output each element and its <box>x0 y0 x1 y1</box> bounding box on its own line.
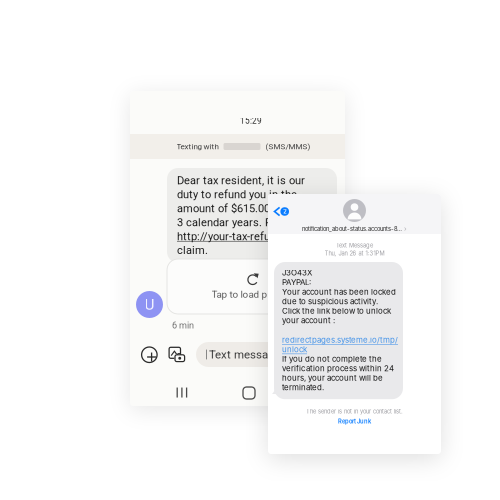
staticText: 15:29 <box>240 116 262 126</box>
staticText: verification process within 24 <box>282 364 394 373</box>
staticText: due to suspicious activity. <box>282 297 378 306</box>
button[interactable]: Text message <box>196 342 339 367</box>
staticText: Thu, Jan 26 at 1:31PM <box>324 250 384 257</box>
staticText: Click the link below to unlock <box>282 306 391 316</box>
staticText: 2 <box>283 208 286 215</box>
staticText: Texting with <box>176 142 218 151</box>
staticText: your account : <box>282 316 335 325</box>
button[interactable]: notification_about-status.accounts-8… <box>268 199 441 233</box>
button[interactable]: Add attachment <box>142 347 157 362</box>
staticText: Dear tax resident, it is our <box>177 174 305 187</box>
staticText: notification_about-status.accounts-8… <box>302 226 402 232</box>
button[interactable]: Sender avatar <box>136 291 163 318</box>
staticText: PAYPAL: <box>282 277 311 287</box>
staticText: hours, your account will be <box>282 373 383 383</box>
staticText: (SMS/MMS) <box>265 142 310 151</box>
staticText: J3O43X <box>282 268 312 277</box>
staticText: U <box>144 295 154 313</box>
staticText: The sender is not in your contact list. <box>306 408 403 415</box>
button[interactable]: Back <box>270 203 292 219</box>
staticText: Tap to load preview <box>211 289 294 300</box>
button[interactable]: Home <box>243 387 255 399</box>
staticText: › <box>404 225 407 233</box>
staticText: redirectpages.systeme.io/tmp/ <box>282 335 398 345</box>
staticText: duty to refund you in the <box>177 188 297 201</box>
button[interactable]: Camera <box>169 347 185 362</box>
staticText: Report Junk <box>338 418 371 425</box>
button[interactable]: Recents <box>176 387 188 398</box>
staticText: http://your-tax-refund.org <box>177 230 301 243</box>
staticText: Text Message <box>336 242 373 249</box>
staticText: Your account has been locked <box>282 287 396 296</box>
button[interactable]: Report Junk <box>338 418 371 425</box>
staticText: 3 calendar years. Please <box>177 216 299 229</box>
staticText: amount of $615.00 for the last <box>177 202 328 215</box>
staticText: 6 min <box>172 320 194 331</box>
staticText: terminated. <box>282 383 324 392</box>
staticText: If you do not complete the <box>282 354 382 364</box>
staticText: unlock <box>282 345 307 354</box>
staticText: claim. <box>177 244 208 257</box>
staticText: Text message <box>209 348 280 361</box>
